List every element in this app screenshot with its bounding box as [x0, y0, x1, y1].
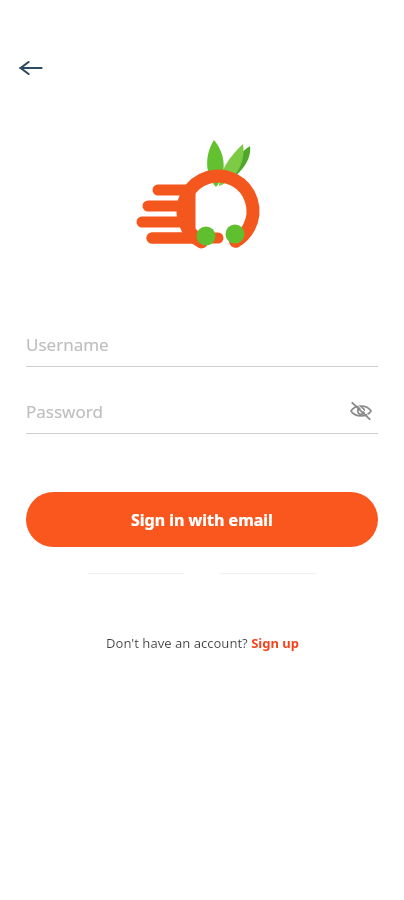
button[interactable]: Username: [26, 322, 378, 367]
button[interactable]: Don't have an account? Sign up: [94, 628, 311, 658]
button[interactable]: Show password: [344, 394, 378, 428]
button[interactable]: Sign in with email: [26, 492, 378, 547]
staticText: Sign in with email: [131, 509, 273, 531]
staticText: Username: [26, 333, 109, 356]
button[interactable]: Back: [10, 47, 52, 89]
button[interactable]: Password: [26, 389, 378, 433]
staticText: Password: [26, 400, 103, 423]
staticText: Don't have an account? Sign up: [106, 634, 299, 652]
